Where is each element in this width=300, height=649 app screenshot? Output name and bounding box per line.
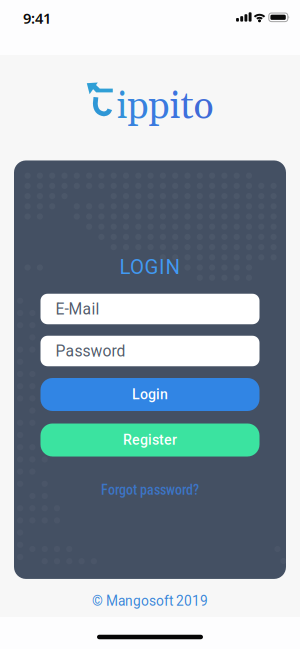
staticText: p (127, 83, 148, 131)
staticText: i (116, 83, 127, 131)
staticText: Forgot password? (101, 482, 199, 498)
button[interactable]: Forgot password? (101, 482, 199, 498)
staticText: Login (132, 386, 168, 403)
staticText: Password (55, 342, 125, 360)
button[interactable]: Password (40, 336, 259, 366)
button[interactable]: Login (40, 378, 259, 411)
staticText: o (193, 83, 213, 131)
staticText: E-Mail (55, 300, 99, 318)
staticText: 9:41 (23, 8, 51, 28)
button[interactable]: E-Mail (40, 294, 259, 324)
staticText: i (169, 83, 180, 131)
staticText: © Mangosoft 2019 (92, 593, 208, 609)
staticText: p (148, 83, 169, 131)
staticText: LOGIN (119, 255, 180, 279)
button[interactable]: Register (40, 423, 259, 456)
staticText: Register (123, 432, 177, 448)
staticText: t (180, 83, 193, 131)
